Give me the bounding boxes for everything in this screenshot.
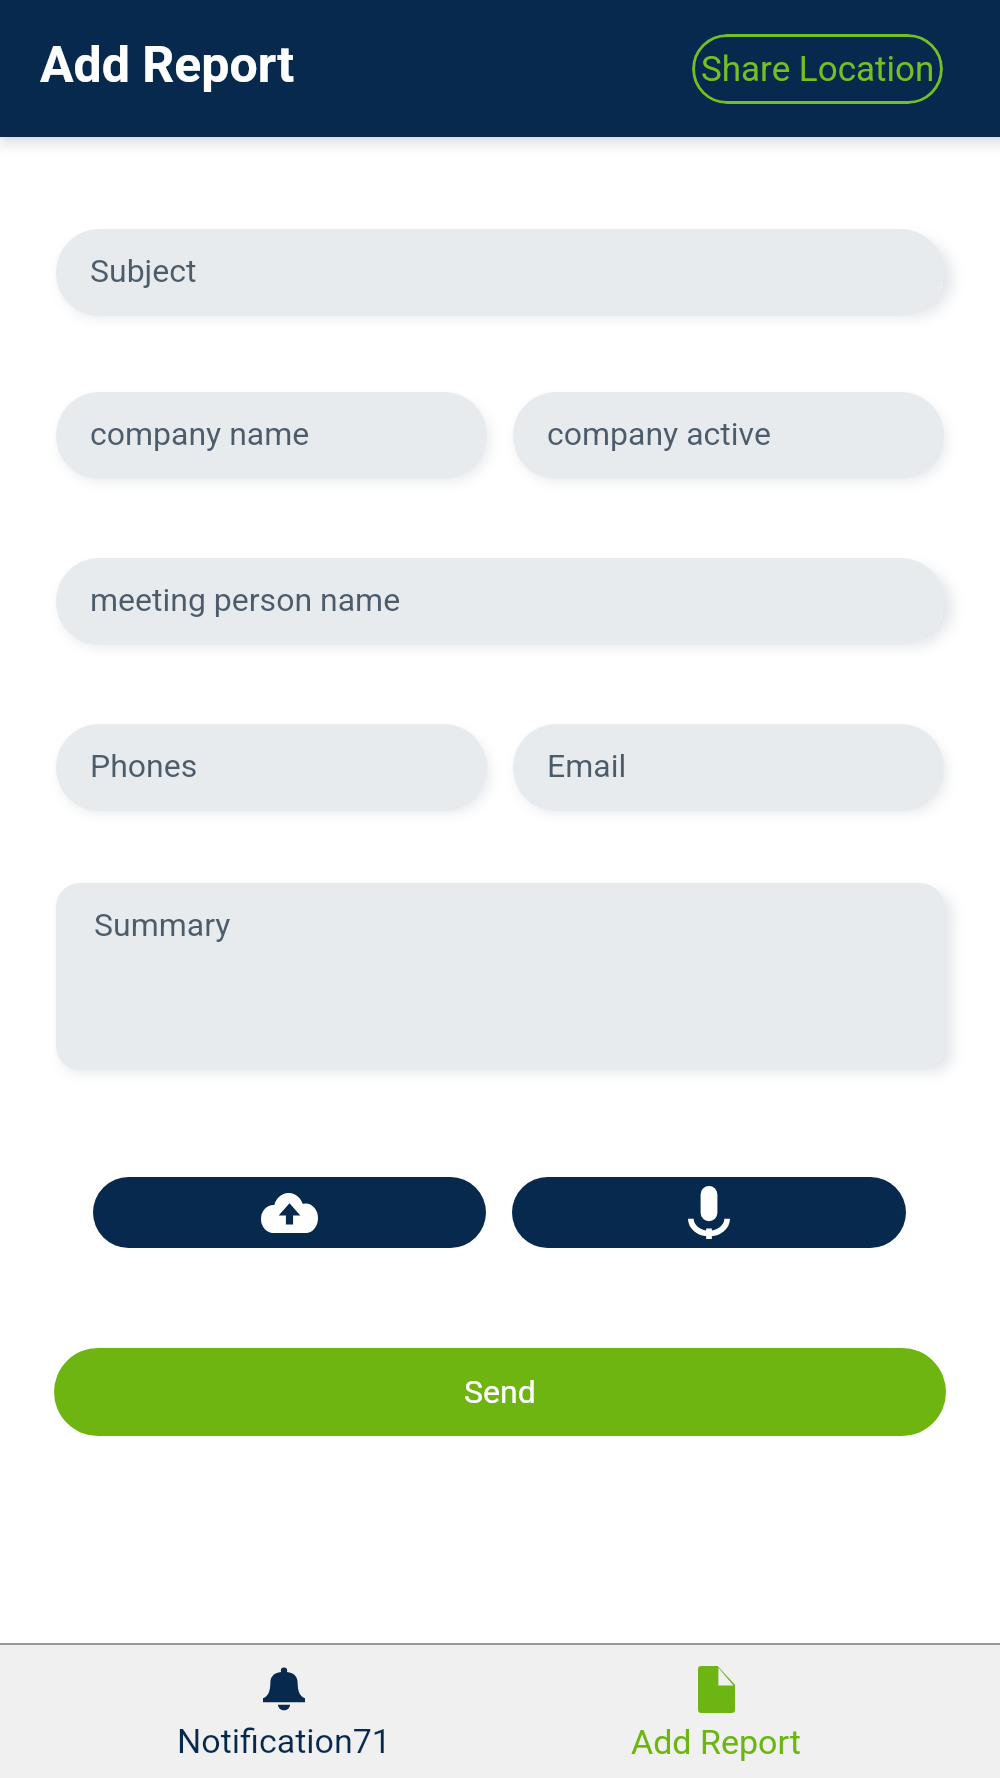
- staticText: Add Report: [631, 1722, 801, 1762]
- button[interactable]: company active: [513, 392, 944, 479]
- button[interactable]: Send: [54, 1348, 946, 1436]
- staticText: Phones: [90, 747, 198, 785]
- staticText: Share Location: [701, 49, 935, 90]
- staticText: Summary: [94, 906, 231, 944]
- staticText: Email: [547, 747, 627, 785]
- button[interactable]: company name: [56, 392, 487, 479]
- staticText: meeting person name: [90, 581, 401, 619]
- button[interactable]: Record voice note: [512, 1177, 906, 1248]
- button[interactable]: Email: [513, 724, 944, 811]
- staticText: Send: [464, 1373, 536, 1411]
- staticText: company name: [90, 415, 310, 453]
- staticText: company active: [547, 415, 771, 453]
- staticText: Subject: [90, 252, 197, 290]
- staticText: Notification71: [177, 1721, 391, 1761]
- button[interactable]: Subject: [56, 229, 944, 316]
- button[interactable]: Summary: [56, 883, 944, 1070]
- button[interactable]: meeting person name: [56, 558, 944, 645]
- staticText: Add Report: [40, 36, 295, 95]
- button[interactable]: Share Location: [692, 34, 943, 104]
- button[interactable]: Notification71: [68, 1645, 500, 1778]
- button[interactable]: Phones: [56, 724, 487, 811]
- button[interactable]: Add Report: [500, 1645, 932, 1778]
- button[interactable]: Upload file: [93, 1177, 486, 1248]
